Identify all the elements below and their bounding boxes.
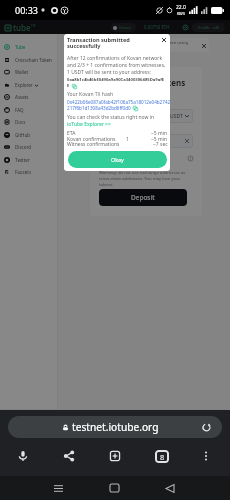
staticText: Deposit [131,193,155,202]
staticText: E [67,83,70,89]
staticText: 0.3231 [152,113,167,119]
staticText: ~5 min [151,130,168,137]
button[interactable]: Switch tabs [150,444,174,468]
staticText: 0.00750 ETH [144,24,170,30]
button[interactable]: FAQ [0,104,57,116]
button[interactable]: testnet.iotube.org [8,416,222,438]
staticText: Twitter [15,157,30,163]
staticText: 00:33 [15,4,39,16]
button[interactable]: GitHub [0,129,57,141]
button[interactable]: Tube [0,41,57,53]
staticText: KB/S [177,11,185,16]
staticText: Crosschain Token [15,57,52,63]
button[interactable]: Copy address [72,84,77,89]
button[interactable]: Kovan [111,23,136,32]
button[interactable]: Recent apps [46,476,70,500]
staticText: 0x422b06e087a0fab42f106a75a18012e04b2742 [67,99,170,105]
staticText: 1 [103,111,108,121]
button[interactable]: Close dialog [160,36,168,44]
staticText: Tube [15,44,26,50]
button[interactable]: Dismiss notice [200,42,207,49]
staticText: USDT [170,113,183,120]
staticText: tube [13,22,31,33]
staticText: Explorer [15,82,33,88]
staticText: Kovan confirmations [67,136,116,143]
staticText: Wallet [15,69,29,75]
button[interactable]: Crosschain Token [0,54,57,66]
button[interactable]: More options [194,444,218,468]
staticText: FAQ [15,107,24,113]
staticText: ETA [67,130,76,137]
staticText: Witness confirmations [67,141,120,148]
button[interactable]: Okay [68,151,167,168]
staticText: Warning: do not use exchange addresses a… [99,170,193,188]
button[interactable]: Wallet [0,66,57,78]
staticText: After 12 confirmations of Kovan network … [67,55,168,76]
button[interactable]: Home [102,476,126,500]
button[interactable]: 1 [99,109,193,123]
staticText: 1 [126,136,129,143]
staticText: Assets [15,94,29,100]
staticText: 8 [160,452,165,462]
button[interactable]: Explorer [0,79,57,91]
staticText: Faucets [15,169,32,175]
button[interactable]: Faucets [0,166,57,178]
button[interactable]: 0xa8b...afE [192,23,225,32]
staticText: Discord [15,144,32,150]
staticText: 217f6b1d1308a43d2bd6ff0d0 [67,105,131,111]
button[interactable]: ioTube Explorer >> [67,121,111,128]
staticText: io1qy...30848 [103,138,134,145]
button[interactable]: Back [158,476,182,500]
button[interactable]: Reload page [199,420,213,434]
staticText: Your Kovan TX hash [67,91,114,98]
button[interactable]: Copy hash [133,106,138,111]
staticText: 22.0 [176,4,186,11]
button[interactable]: Assets [0,91,57,103]
staticText: ~5 min [151,136,168,143]
button[interactable]: Settings [181,23,189,31]
staticText: Fee 1vIPn [111,155,137,162]
staticText: TM [31,24,36,28]
staticText: 0xa8b1c4b46bE0490a9a90Ca3400306485Da9afE [67,77,168,83]
staticText: Deposit ERC20 tokens to IoTeX testnet [99,77,194,98]
staticText: Transaction submitted successfully [67,36,137,50]
staticText: Kovan [119,25,132,31]
button[interactable]: Docs [0,116,57,128]
staticText: Important: please read the tutorial befo… [94,40,200,51]
button[interactable]: Deposit [99,189,187,206]
button[interactable]: Discord [0,141,57,153]
staticText: Docs [15,119,26,125]
button[interactable]: New tab [103,444,127,468]
staticText: GitHub [15,132,30,138]
button[interactable]: Twitter [0,154,57,166]
staticText: Amount [99,102,115,108]
button[interactable]: io1qy...30848 [99,134,193,148]
staticText: ~7 sec [153,141,168,148]
button[interactable]: Share [57,444,81,468]
staticText: Okay [111,156,124,163]
button[interactable]: Voice search [11,444,35,468]
staticText: 0xa8b...afE [198,25,220,31]
staticText: testnet.iotube.org [72,420,159,434]
staticText: You can check the status right now in [67,114,155,121]
